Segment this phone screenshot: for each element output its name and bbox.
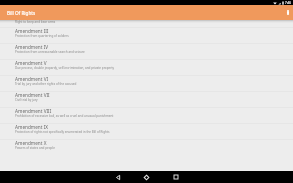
button[interactable]: Back	[103, 171, 132, 183]
button[interactable]: Amendment VII	[0, 91, 293, 107]
staticText: Amendment V	[15, 60, 47, 66]
staticText: Amendment X	[15, 140, 47, 146]
staticText: Amendment VIII	[15, 108, 52, 114]
button[interactable]: Amendment VIII	[0, 107, 293, 123]
staticText: Protection from quartering of soldiers	[15, 34, 69, 38]
button[interactable]: Amendment III	[0, 27, 293, 43]
staticText: 7:46	[285, 1, 291, 5]
button[interactable]: Amendment V	[0, 59, 293, 75]
button[interactable]: Recent apps	[161, 171, 190, 183]
staticText: Due process, double jeopardy, self-incri…	[15, 66, 115, 70]
staticText: Amendment III	[15, 28, 49, 34]
button[interactable]: Amendment IV	[0, 43, 293, 59]
staticText: Civil trial by jury	[15, 98, 38, 102]
staticText: Amendment VII	[15, 92, 50, 98]
button[interactable]: Right to keep and bear arms	[0, 20, 293, 27]
button[interactable]: Home	[132, 171, 161, 183]
staticText: Amendment IV	[15, 44, 49, 50]
staticText: Amendment IX	[15, 124, 48, 130]
staticText: Amendment VI	[15, 76, 49, 82]
staticText: Prohibition of excessive bail, as well a…	[15, 114, 114, 118]
staticText: Protection from unreasonable search and …	[15, 50, 85, 54]
staticText: Protection of rights not specifically en…	[15, 130, 110, 134]
staticText: Right to keep and bear arms	[15, 20, 56, 24]
staticText: Trial by jury and other rights of the ac…	[15, 82, 77, 86]
button[interactable]: More options	[282, 5, 293, 20]
staticText: Powers of states and people	[15, 146, 55, 150]
button[interactable]: Amendment IX	[0, 123, 293, 139]
button[interactable]: Amendment VI	[0, 75, 293, 91]
staticText: Bill Of Rights	[7, 10, 36, 16]
button[interactable]: Amendment X	[0, 139, 293, 155]
